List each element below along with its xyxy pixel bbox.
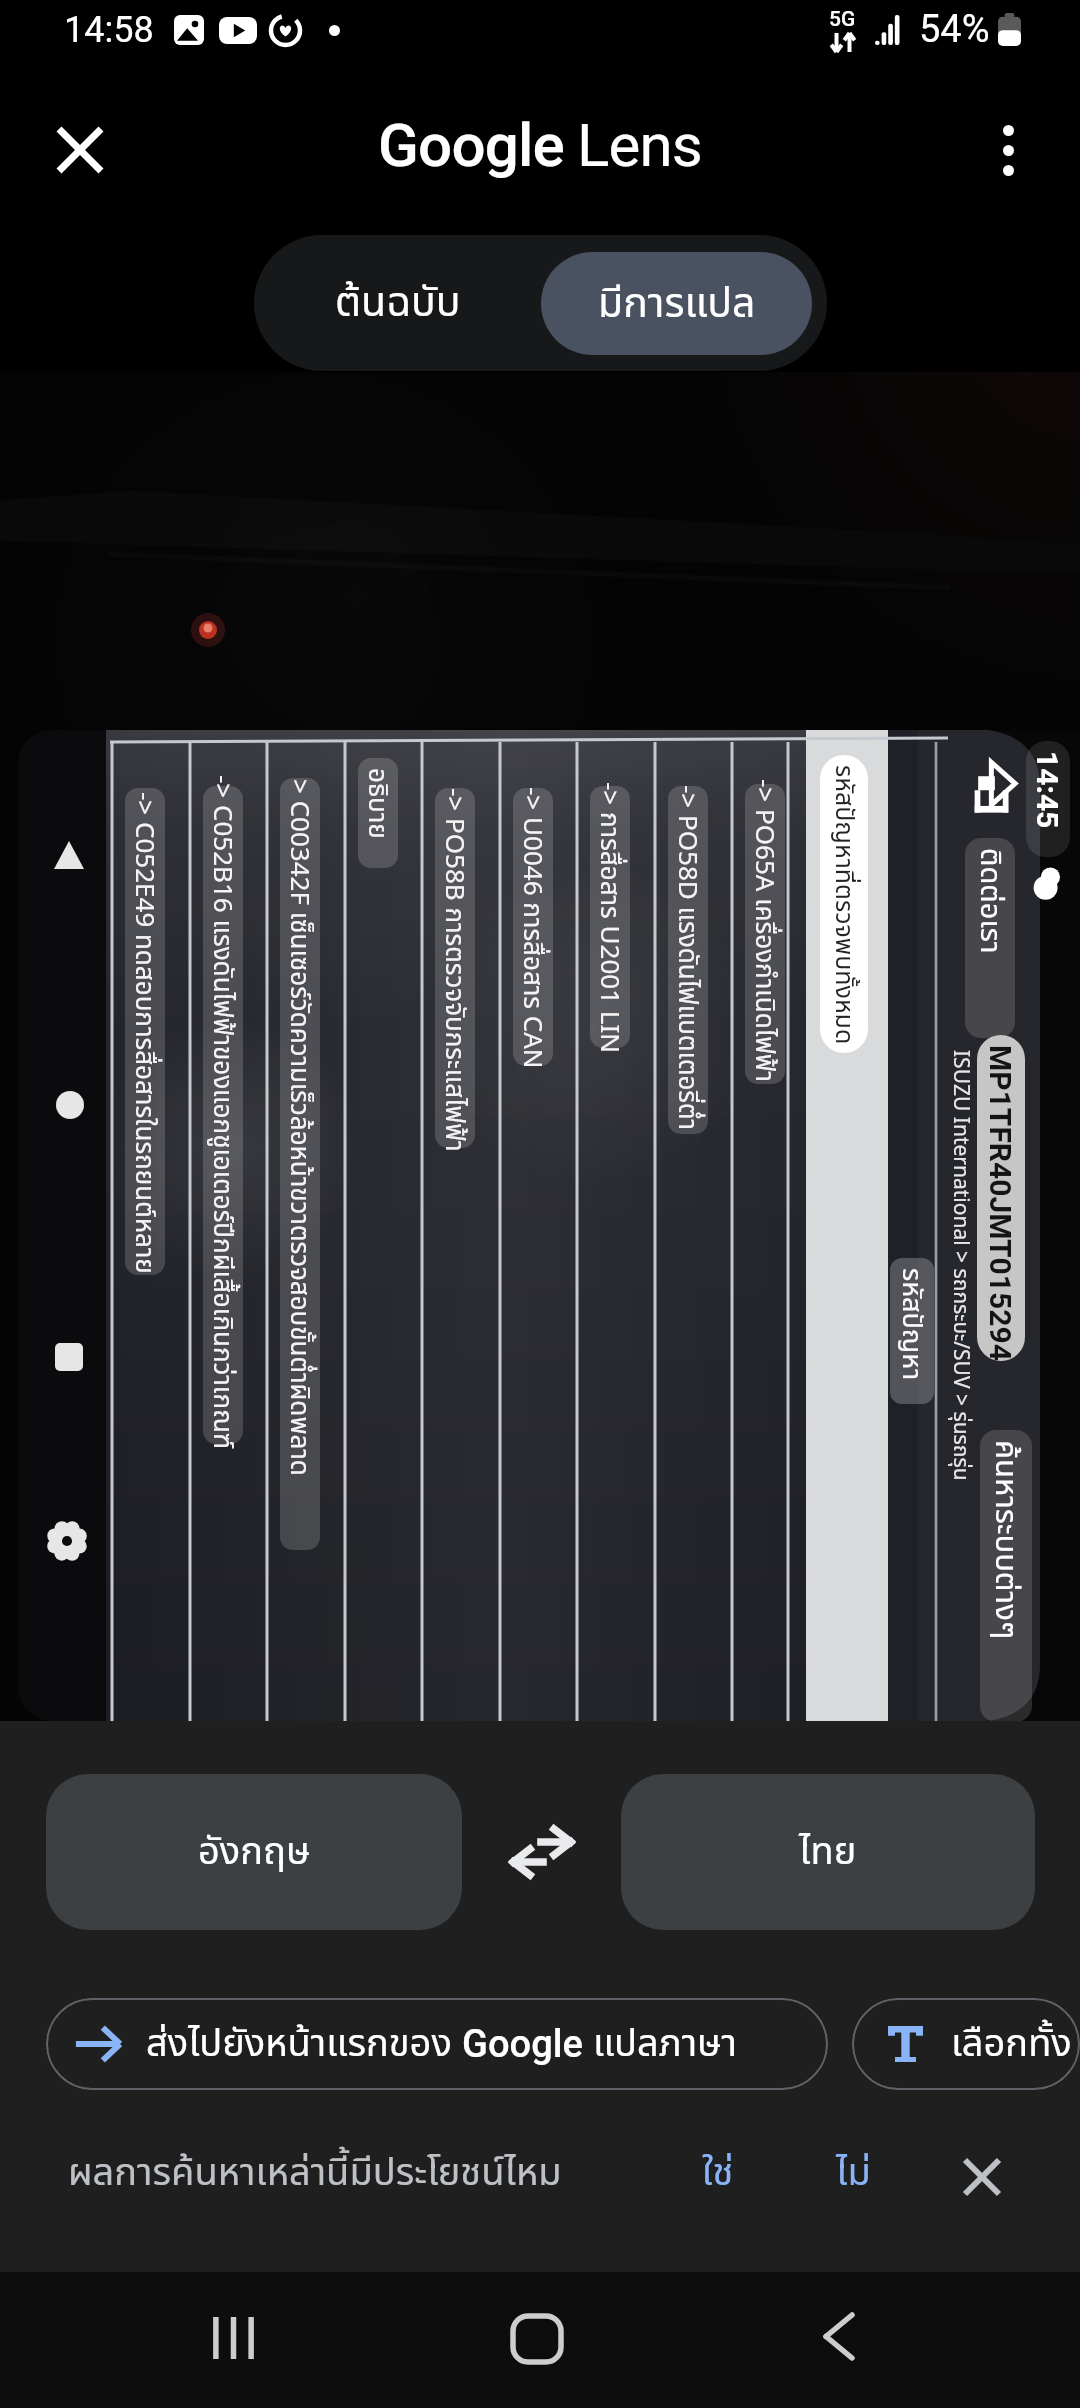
staticText: มีการแปล xyxy=(598,273,756,335)
staticText: 54% xyxy=(919,7,990,52)
staticText: ติดต่อเรา xyxy=(968,848,1012,954)
button[interactable]: มีการแปล xyxy=(541,252,812,355)
staticText: อธิบาย xyxy=(358,768,397,839)
button[interactable]: Home xyxy=(477,2279,597,2399)
staticText: 5G xyxy=(829,7,856,32)
staticText: -> การสื่อสาร U2001 LIN xyxy=(590,782,629,1053)
button[interactable]: อังกฤษ xyxy=(46,1774,462,1930)
button[interactable]: ใช่ xyxy=(686,2131,750,2216)
staticText: -> U0046 การสื่อสาร CAN xyxy=(513,787,552,1069)
button[interactable]: Back xyxy=(779,2276,899,2396)
button[interactable]: ต้นฉบับ xyxy=(254,235,541,371)
staticText: ส่งไปยังหน้าแรกของ xyxy=(146,2016,462,2073)
staticText: ใช่ xyxy=(702,2145,734,2202)
button[interactable]: Dismiss xyxy=(942,2137,1022,2217)
staticText: -> PO58D แรงดันไฟแบตเตอรี่ต่ำ xyxy=(668,785,707,1131)
button[interactable]: Recents xyxy=(173,2278,293,2398)
staticText: -> C052E49 ทดสอบการสื่อสารในรถยนต์หลาย xyxy=(125,792,164,1274)
button[interactable]: ไม่ xyxy=(820,2131,887,2216)
button[interactable]: เลือกทั้ง xyxy=(852,1998,1080,2090)
staticText: > C00342F เซ็นเซอร์วัดความเร็วล้อหน้าขวา… xyxy=(280,779,319,1476)
staticText: แปลภาษา xyxy=(583,2016,737,2073)
button[interactable]: ส่งไปยังหน้าแรกของ xyxy=(46,1998,828,2090)
staticText: Lens xyxy=(577,110,703,180)
staticText: อังกฤษ xyxy=(198,1824,311,1881)
staticText: Google xyxy=(462,2022,583,2067)
staticText: รหัสปัญหาที่ตรวจพบทั้งหมด xyxy=(825,765,863,1045)
staticText: รหัสปัญหา xyxy=(891,1268,932,1381)
staticText: 14:45 น. xyxy=(1030,751,1065,857)
staticText: -> PO58B การตรวจจับกระแสไฟฟ้า xyxy=(435,788,474,1152)
staticText: 14:58 xyxy=(64,9,154,51)
staticText: ไทย xyxy=(799,1824,857,1881)
staticText: ต้นฉบับ xyxy=(335,272,461,334)
staticText: ISUZU International > รถกระบะ/SUV > รุ่น… xyxy=(944,1050,976,1490)
staticText: -> PO65A เครื่องกำเนิดไฟฟ้าตก xyxy=(745,779,784,1099)
staticText: ค้นหาระบบต่างๆ xyxy=(982,1440,1029,1640)
button[interactable]: Swap languages xyxy=(462,1774,621,1930)
button[interactable]: Translated camera image xyxy=(0,372,1080,1721)
staticText: -> C052B16 แรงดันไฟฟ้าของแอกชูเอเตอร์ปีก… xyxy=(203,775,242,1450)
staticText: เลือกทั้ง xyxy=(951,2016,1072,2073)
button[interactable]: ผลการค้นหาเหล่านี้มีประโยชน์ไหม xyxy=(52,2131,578,2216)
staticText: ผลการค้นหาเหล่านี้มีประโยชน์ไหม xyxy=(68,2145,562,2202)
staticText: Google xyxy=(378,110,564,180)
button[interactable]: ไทย xyxy=(621,1774,1035,1930)
button[interactable]: More options xyxy=(958,100,1058,200)
staticText: ไม่ xyxy=(836,2145,871,2202)
button[interactable]: Close xyxy=(30,100,130,200)
staticText: MP1TFR40JMT015294 xyxy=(983,1045,1018,1361)
